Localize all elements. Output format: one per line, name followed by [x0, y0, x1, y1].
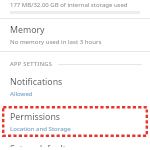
staticText: Set as default: [10, 143, 66, 147]
staticText: 177 MB/32.00 GB of internal storage used: [10, 1, 128, 9]
staticText: No memory used in last 3 hours: [10, 37, 102, 45]
button[interactable]: Memory: [0, 19, 150, 49]
other: Permissions highlight: [2, 106, 148, 137]
staticText: Allowed: [10, 89, 33, 97]
staticText: Notifications: [10, 76, 63, 88]
staticText: Location and Storage: [10, 124, 71, 132]
button[interactable]: Notifications: [0, 75, 150, 100]
staticText: Permissions: [10, 111, 61, 123]
button[interactable]: Set as default: [0, 142, 150, 150]
button[interactable]: Permissions: [2, 106, 148, 137]
staticText: APP SETTINGS: [10, 60, 53, 68]
staticText: Memory: [10, 24, 45, 36]
